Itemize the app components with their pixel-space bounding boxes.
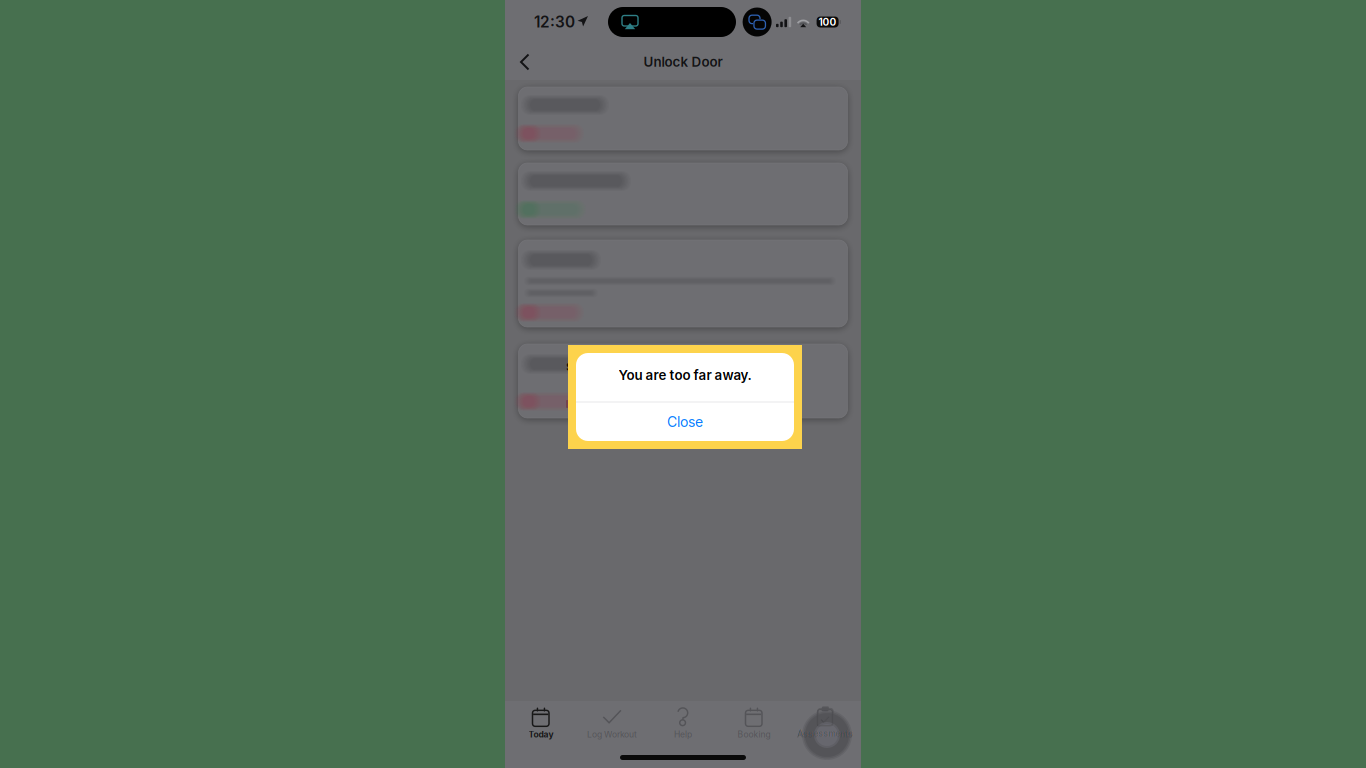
staticText: Assessments: [797, 728, 853, 739]
staticText: 100: [819, 16, 837, 28]
staticText: Booking: [737, 729, 770, 740]
staticText: Help: [674, 729, 692, 740]
staticText: Assessments: [797, 729, 853, 740]
button[interactable]: Log Workout: [576, 703, 647, 743]
staticText: s: [566, 358, 573, 374]
staticText: Close: [667, 413, 703, 430]
button[interactable]: Help: [647, 703, 718, 743]
button[interactable]: Assessments: [790, 702, 861, 742]
staticText: Log Workout: [587, 729, 637, 740]
button[interactable]: Today: [505, 703, 576, 743]
staticText: You are too far away.: [618, 367, 751, 383]
button[interactable]: Close: [576, 402, 794, 441]
button[interactable]: Back: [511, 47, 539, 77]
staticText: Unlock Door: [643, 54, 722, 70]
staticText: Today: [528, 729, 553, 740]
button[interactable]: Assessments: [789, 703, 860, 743]
staticText: 12:30: [534, 13, 575, 31]
button[interactable]: Booking: [718, 703, 789, 743]
